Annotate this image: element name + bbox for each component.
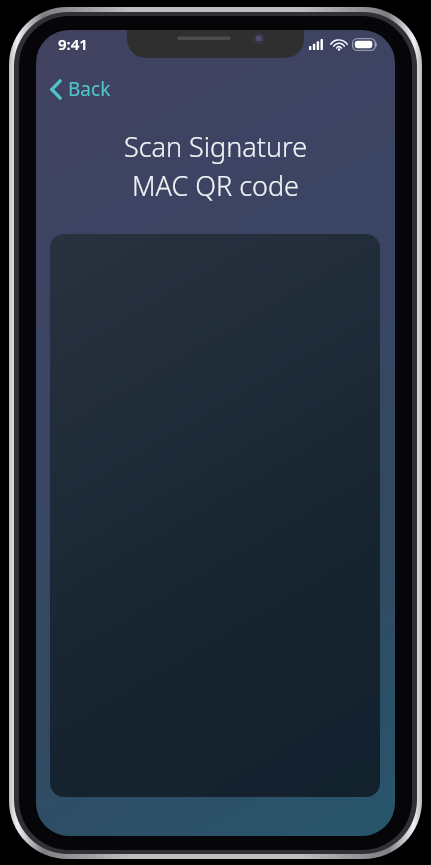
staticText: Scan Signature MAC QR code (48, 128, 383, 204)
button[interactable]: QR code camera viewfinder (50, 234, 380, 797)
staticText: 9:41 (58, 34, 88, 54)
button[interactable]: Back (42, 72, 121, 106)
staticText: Back (68, 76, 111, 102)
